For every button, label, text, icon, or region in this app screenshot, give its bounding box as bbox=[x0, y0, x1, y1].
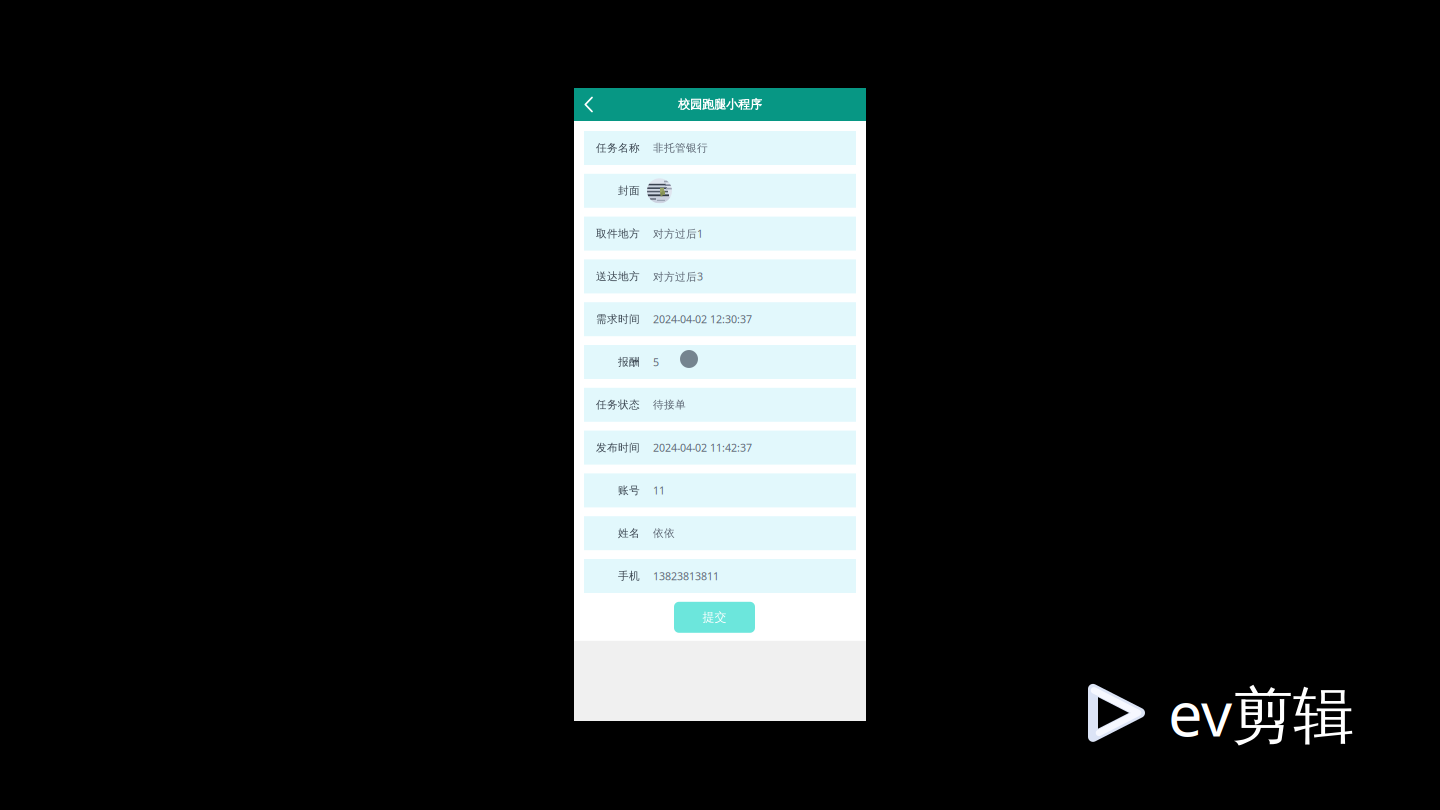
staticText: 送达地方 bbox=[596, 270, 640, 283]
staticText: 姓名 bbox=[618, 527, 640, 540]
staticText: 对方过后3 bbox=[653, 269, 703, 283]
staticText: 提交 bbox=[702, 610, 726, 625]
staticText: 封面 bbox=[618, 184, 640, 197]
staticText: 对方过后1 bbox=[653, 226, 703, 241]
staticText: 非托管银行 bbox=[653, 141, 708, 154]
staticText: 账号 bbox=[618, 484, 640, 497]
staticText: 校园跑腿小程序 bbox=[678, 97, 762, 112]
staticText: 任务名称 bbox=[596, 141, 640, 154]
staticText: 2024-04-02 11:42:37 bbox=[653, 440, 752, 455]
button[interactable]: Back bbox=[574, 88, 603, 121]
staticText: 取件地方 bbox=[596, 227, 640, 240]
staticText: 需求时间 bbox=[596, 313, 640, 326]
button[interactable]: 提交 bbox=[674, 602, 755, 633]
staticText: 依依 bbox=[653, 527, 675, 540]
staticText: 2024-04-02 12:30:37 bbox=[653, 312, 752, 326]
staticText: 11 bbox=[653, 483, 665, 497]
staticText: 待接单 bbox=[653, 398, 686, 411]
staticText: 手机 bbox=[618, 569, 640, 582]
staticText: ev剪辑 bbox=[1168, 672, 1354, 754]
staticText: 发布时间 bbox=[596, 441, 640, 454]
staticText: 13823813811 bbox=[653, 569, 719, 583]
staticText: 5 bbox=[653, 355, 659, 369]
staticText: 任务状态 bbox=[596, 398, 640, 411]
staticText: 报酬 bbox=[618, 355, 640, 368]
